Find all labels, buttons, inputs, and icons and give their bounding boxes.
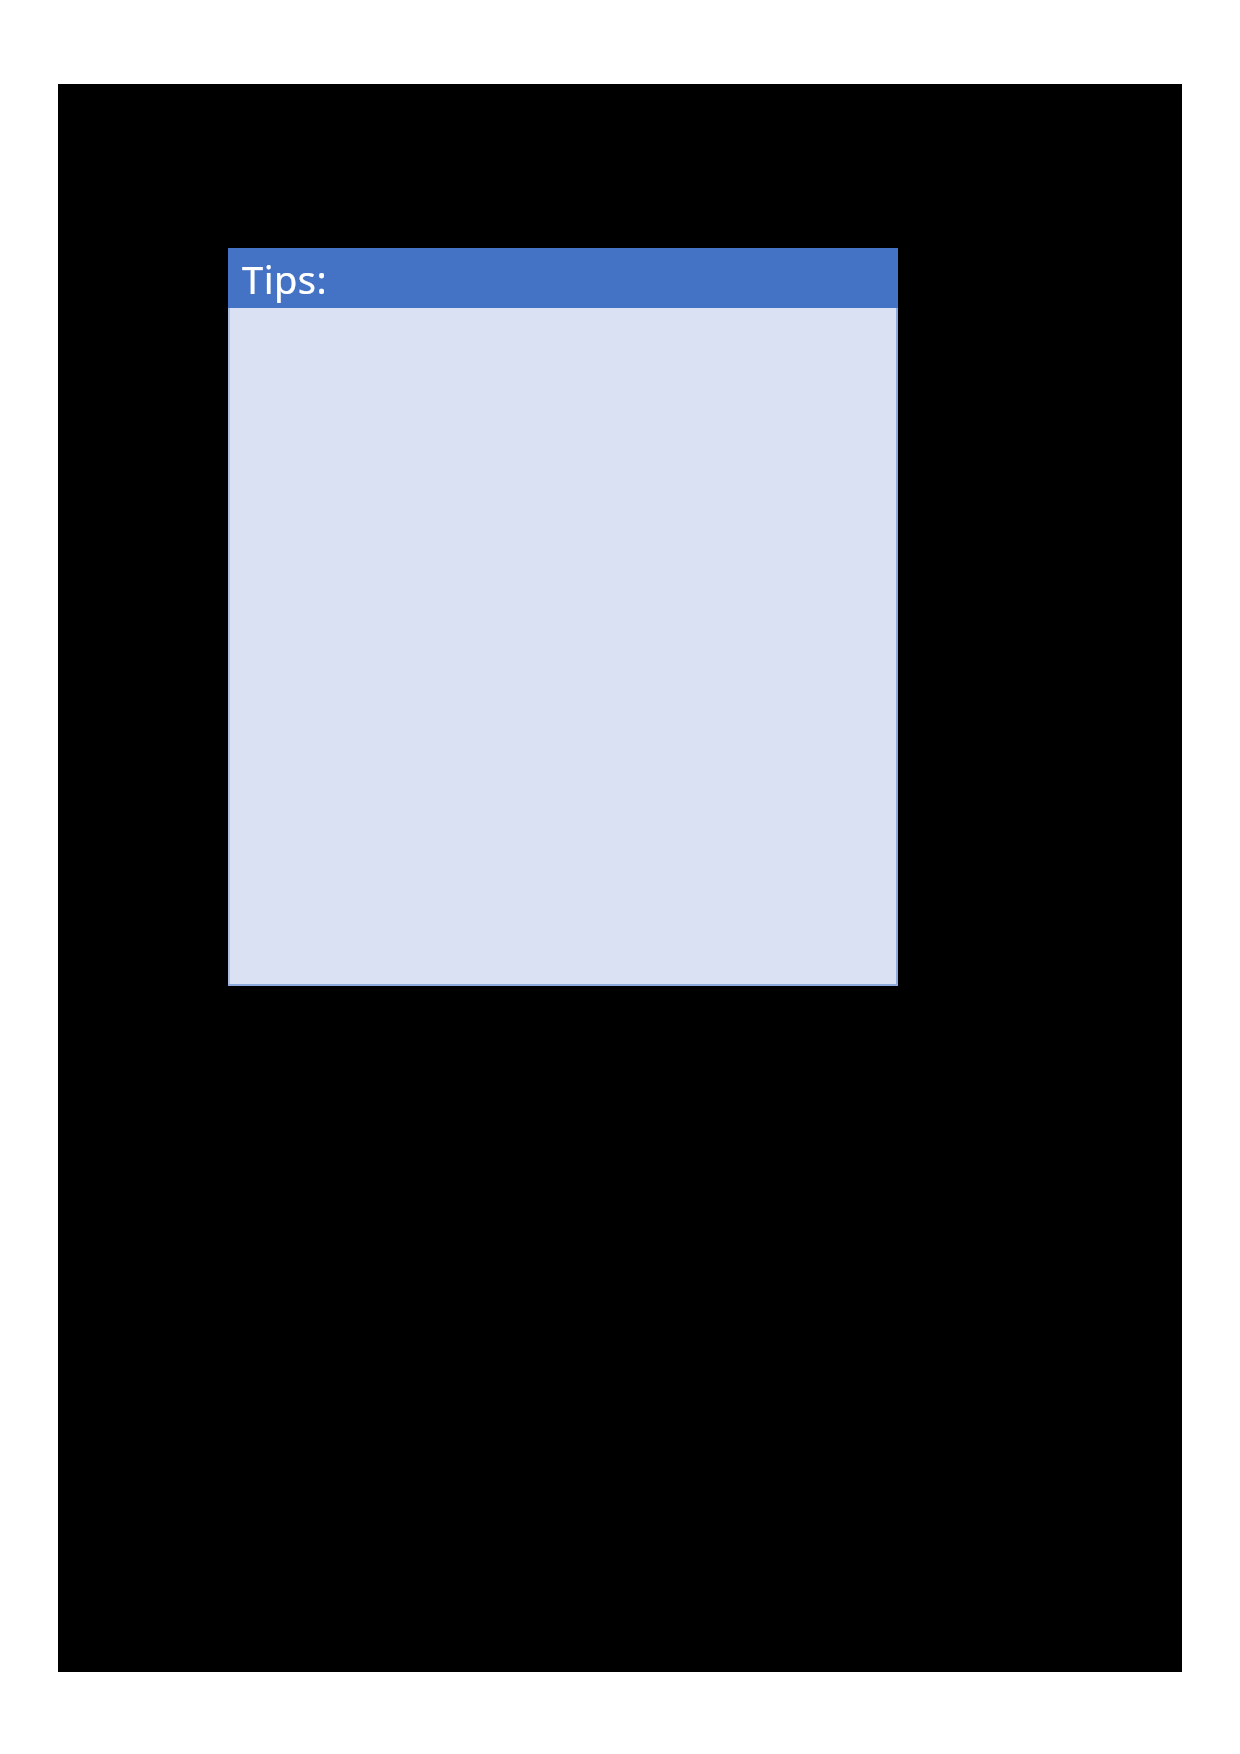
button[interactable]: Tips: xyxy=(228,248,898,308)
button[interactable]: Tips note body xyxy=(228,308,898,986)
staticText: Tips: xyxy=(242,253,328,305)
button[interactable]: Tips: xyxy=(228,248,898,986)
